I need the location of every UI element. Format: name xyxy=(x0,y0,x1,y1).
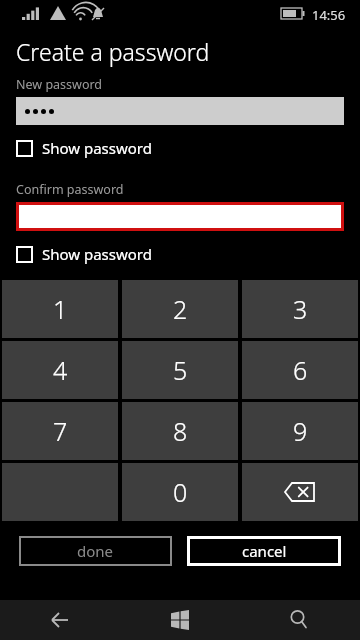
staticText: 7 xyxy=(53,414,68,448)
staticText: 2 xyxy=(173,292,188,326)
button[interactable]: done xyxy=(19,536,172,566)
button[interactable]: 2 xyxy=(122,280,238,338)
button[interactable]: 8 xyxy=(122,402,238,460)
button[interactable]: 7 xyxy=(2,402,118,460)
button[interactable]: 6 xyxy=(242,341,358,399)
button[interactable]: Backspace xyxy=(242,463,358,521)
staticText: done xyxy=(77,541,114,561)
button[interactable]: 4 xyxy=(2,341,118,399)
button[interactable]: 0 xyxy=(122,463,238,521)
staticText: New password xyxy=(16,76,103,93)
button[interactable]: Show password xyxy=(16,241,152,267)
button[interactable]: 1 xyxy=(2,280,118,338)
staticText: cancel xyxy=(242,541,287,561)
staticText: 1 xyxy=(53,292,68,326)
staticText: 0 xyxy=(173,475,188,509)
button[interactable]: 5 xyxy=(122,341,238,399)
button[interactable]: Start xyxy=(120,600,240,640)
staticText: Create a password xyxy=(16,36,210,67)
staticText: 14:56 xyxy=(312,6,346,24)
staticText: 9 xyxy=(293,414,308,448)
staticText: 6 xyxy=(293,353,308,387)
button[interactable]: 3 xyxy=(242,280,358,338)
button[interactable]: Show password xyxy=(16,135,152,161)
button[interactable]: cancel xyxy=(187,536,341,566)
staticText: Show password xyxy=(42,244,152,264)
button[interactable]: Back xyxy=(0,600,120,640)
button[interactable]: 9 xyxy=(242,402,358,460)
staticText: 4 xyxy=(53,353,68,387)
staticText: Show password xyxy=(42,138,152,158)
button[interactable]: Search xyxy=(240,600,360,640)
staticText: Confirm password xyxy=(16,181,124,198)
button[interactable] xyxy=(16,97,344,125)
staticText: 3 xyxy=(293,292,308,326)
staticText: 5 xyxy=(173,353,188,387)
staticText: 8 xyxy=(173,414,188,448)
